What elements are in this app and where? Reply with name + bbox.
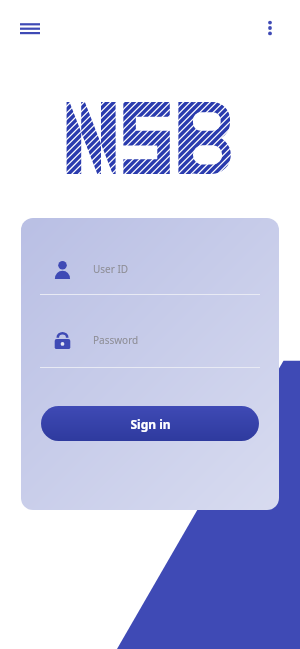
staticText: User ID [93, 262, 129, 276]
staticText: Sign in [130, 416, 171, 432]
button[interactable]: More options [252, 10, 288, 46]
button[interactable]: User ID [21, 252, 279, 286]
staticText: Password [93, 333, 139, 347]
button[interactable]: Menu [12, 10, 48, 46]
button[interactable]: Password [21, 323, 279, 357]
button[interactable]: Sign in [41, 406, 259, 441]
